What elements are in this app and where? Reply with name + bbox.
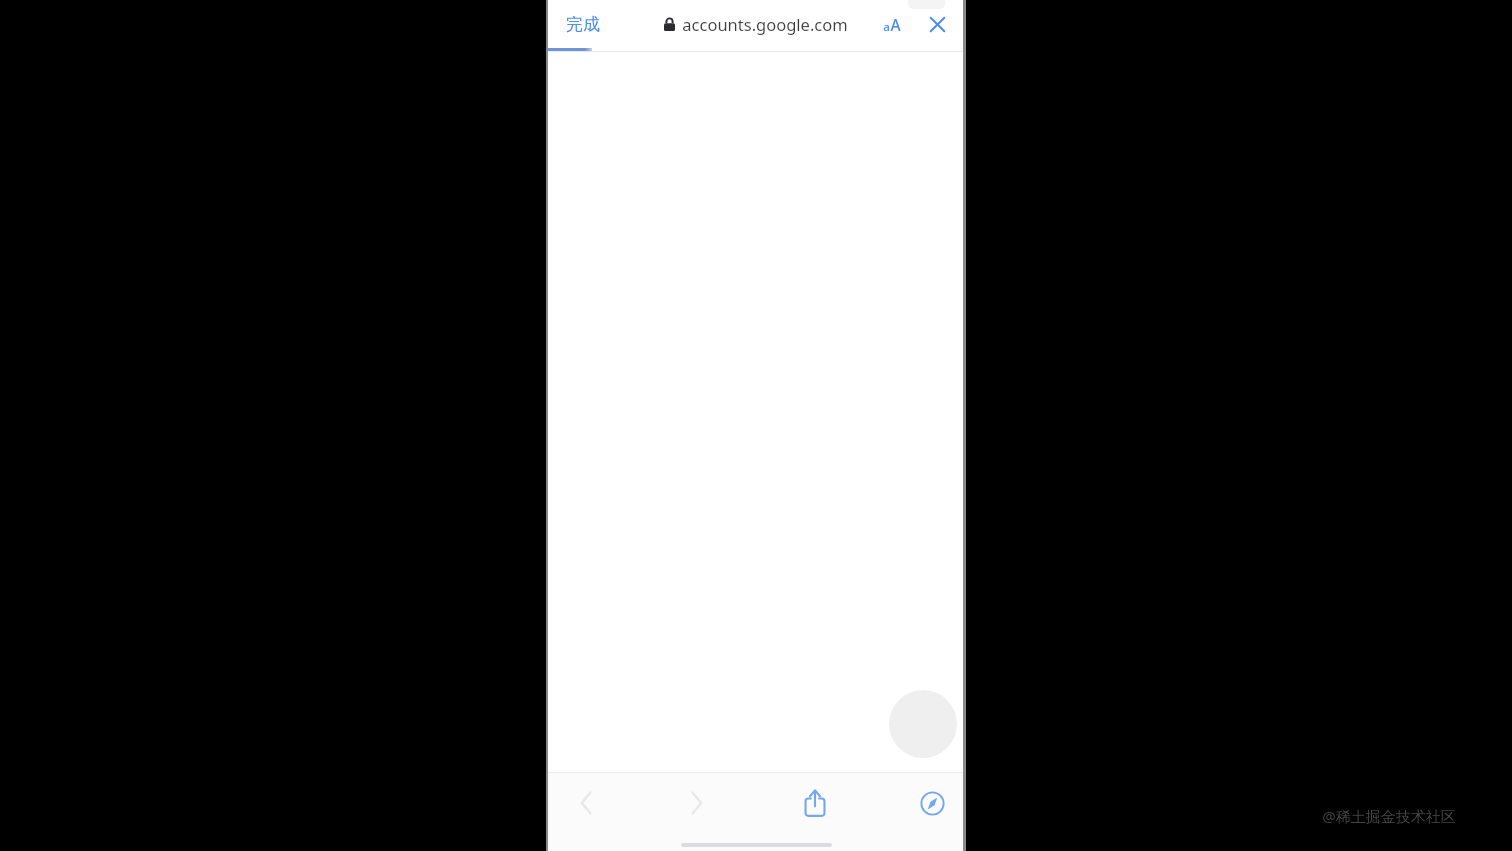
staticText: 完成 <box>566 14 600 35</box>
button[interactable]: 完成 <box>550 2 616 46</box>
staticText: A <box>890 14 901 35</box>
button[interactable]: Close <box>916 2 958 46</box>
button[interactable]: accounts.google.com <box>646 2 866 46</box>
staticText: @稀土掘金技术社区 <box>1322 806 1456 826</box>
staticText: a <box>883 19 890 35</box>
button[interactable]: Open in Safari <box>903 780 961 826</box>
button[interactable]: Text size options <box>872 2 912 46</box>
button[interactable]: Share <box>786 780 844 826</box>
staticText: accounts.google.com <box>682 13 848 35</box>
